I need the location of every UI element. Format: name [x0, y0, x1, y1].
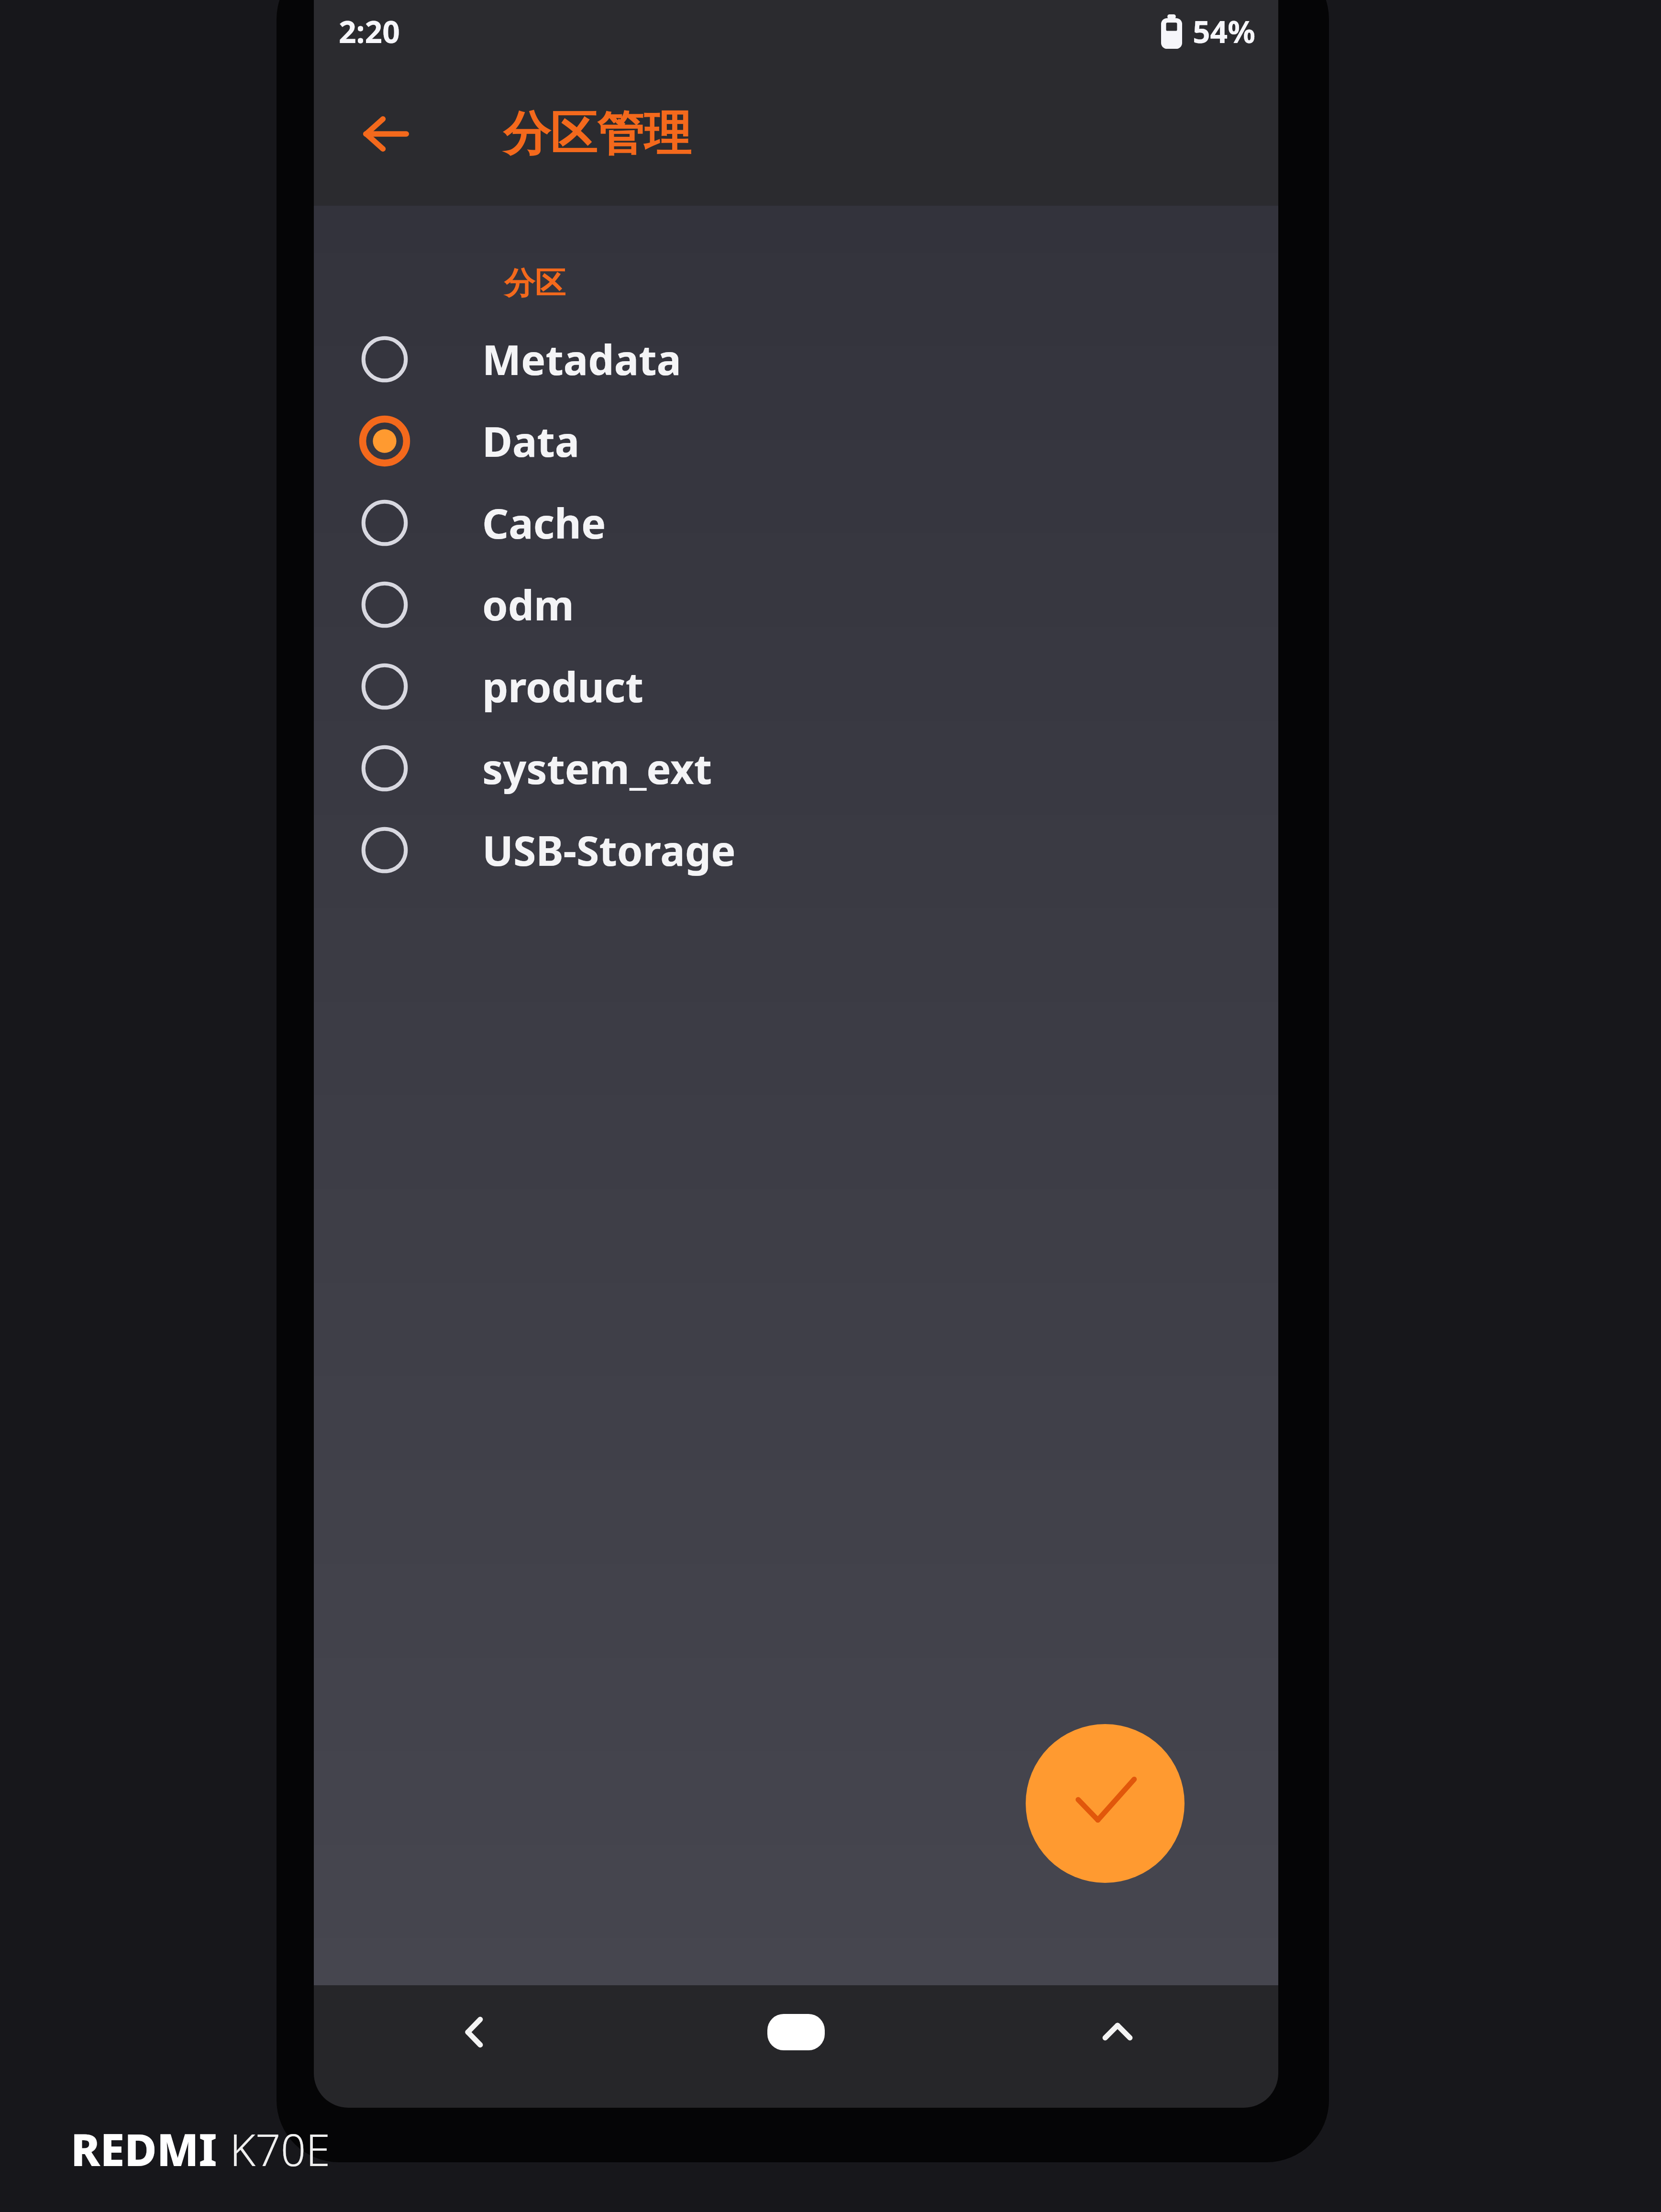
staticText: Cache	[482, 495, 606, 551]
staticText: 2:20	[339, 11, 400, 52]
staticText: Data	[482, 413, 580, 469]
staticText: K70E	[230, 2119, 331, 2179]
button[interactable]: Confirm	[1026, 1724, 1185, 1883]
staticText: USB-Storage	[482, 822, 736, 878]
button[interactable]: Data	[314, 400, 1278, 482]
button[interactable]: system_ext	[314, 727, 1278, 809]
staticText: 分区	[504, 264, 565, 303]
button[interactable]: Cache	[314, 482, 1278, 564]
staticText: REDMI	[71, 2119, 217, 2179]
button[interactable]: odm	[314, 564, 1278, 645]
button[interactable]: Back	[314, 1985, 635, 2079]
staticText: Metadata	[482, 331, 681, 387]
staticText: product	[482, 658, 643, 714]
button[interactable]: Recents	[957, 1985, 1278, 2079]
staticText: 54%	[1193, 11, 1255, 52]
button[interactable]: Back	[352, 100, 419, 167]
button[interactable]: Home	[635, 1985, 957, 2079]
button[interactable]: Metadata	[314, 318, 1278, 400]
staticText: system_ext	[482, 740, 712, 796]
button[interactable]: USB-Storage	[314, 809, 1278, 891]
staticText: odm	[482, 576, 574, 632]
button[interactable]: product	[314, 645, 1278, 727]
staticText: 分区管理	[503, 105, 691, 164]
